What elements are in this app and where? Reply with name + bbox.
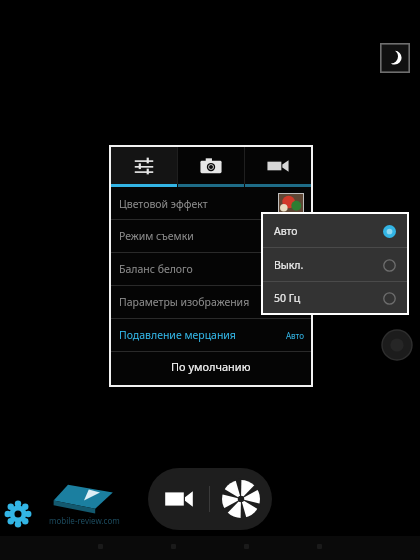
button[interactable]: Авто — [263, 214, 407, 247]
staticText: Цветовой эффект — [119, 197, 208, 211]
button[interactable]: Night mode — [380, 43, 410, 73]
button[interactable]: 50 Гц — [263, 282, 407, 313]
button[interactable]: Подавление мерцания — [111, 319, 311, 351]
staticText: Выкл. — [274, 258, 304, 272]
staticText: 50 Гц — [274, 291, 301, 305]
button[interactable]: По умолчанию — [111, 352, 311, 381]
staticText: По умолчанию — [171, 359, 251, 374]
staticText: Авто — [274, 224, 298, 238]
staticText: Режим съемки — [119, 229, 194, 243]
button[interactable]: Цветовой эффект — [111, 187, 311, 219]
button[interactable] — [178, 147, 244, 184]
staticText: mobile-review.com — [49, 515, 120, 526]
button[interactable] — [245, 147, 311, 184]
staticText: Параметры изображения — [119, 295, 250, 309]
staticText: Авто — [286, 330, 304, 341]
button[interactable]: Параметры изображения — [111, 286, 311, 318]
button[interactable]: Выкл. — [263, 248, 407, 281]
button[interactable] — [111, 147, 177, 184]
staticText: Подавление мерцания — [119, 328, 236, 342]
button[interactable]: Take photo — [210, 468, 272, 530]
button[interactable]: Settings — [4, 500, 32, 528]
button[interactable]: Record video — [148, 468, 209, 530]
button[interactable]: Баланс белого — [111, 253, 311, 285]
staticText: Баланс белого — [119, 262, 193, 276]
button[interactable]: Режим съемки — [111, 220, 311, 252]
